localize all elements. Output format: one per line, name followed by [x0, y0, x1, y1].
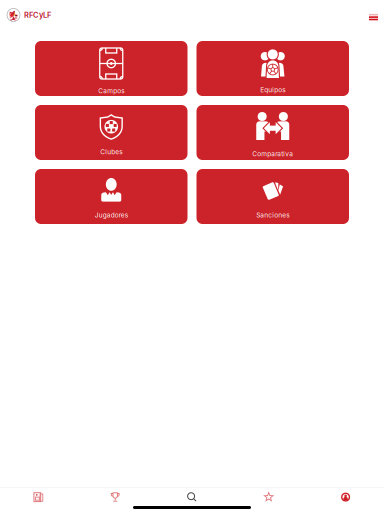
- staticText: Equipos: [260, 86, 285, 94]
- staticText: RFCyLF: [24, 10, 51, 19]
- button[interactable]: Comparativa: [196, 105, 349, 160]
- button[interactable]: Favoritos: [230, 484, 307, 510]
- button[interactable]: Buscar: [154, 485, 230, 510]
- button[interactable]: Clubes: [35, 105, 187, 160]
- button[interactable]: Jugadores: [35, 169, 187, 224]
- staticText: Campos: [98, 87, 124, 95]
- staticText: Comparativa: [252, 150, 293, 158]
- button[interactable]: Sanciones: [196, 169, 349, 224]
- button[interactable]: RFCyLF: [0, 2, 51, 27]
- staticText: Sanciones: [256, 211, 289, 219]
- button[interactable]: Noticias: [0, 484, 77, 510]
- button[interactable]: Perfil: [307, 485, 384, 510]
- button[interactable]: Menu: [359, 4, 384, 26]
- staticText: Jugadores: [95, 211, 128, 219]
- button[interactable]: Equipos: [196, 41, 349, 96]
- staticText: Clubes: [100, 148, 122, 156]
- button[interactable]: Campos: [35, 41, 187, 96]
- button[interactable]: Competiciones: [77, 484, 154, 510]
